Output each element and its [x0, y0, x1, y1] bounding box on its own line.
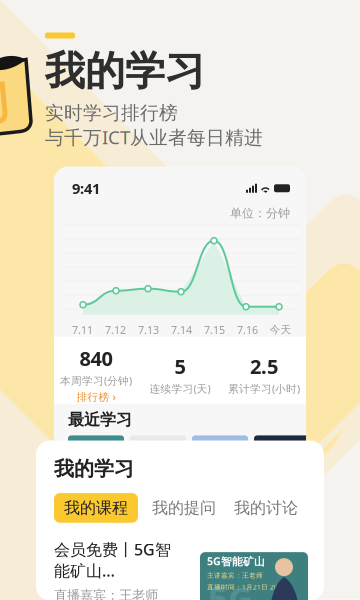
staticText: 我的学习 [45, 46, 205, 96]
staticText: 本周学习(分钟) [60, 373, 132, 388]
staticText: 会员免费丨5G智能矿山… [54, 539, 171, 581]
staticText: 我的提问 [152, 498, 216, 518]
staticText: 实时学习排行榜 [45, 102, 178, 124]
staticText: 5 [174, 353, 185, 380]
staticText: 7.11 [72, 323, 93, 337]
staticText: 累计学习(小时) [228, 381, 300, 396]
staticText: 排行榜 › [76, 390, 115, 404]
staticText: 7.12 [105, 323, 126, 337]
staticText: 2.5 [250, 353, 278, 380]
staticText: 7.15 [204, 323, 225, 337]
staticText: 我的课程 [64, 498, 128, 518]
staticText: 7.16 [237, 323, 258, 337]
staticText: 7.14 [171, 323, 192, 337]
staticText: 连续学习(天) [149, 381, 210, 396]
staticText: 9:41 [72, 178, 100, 198]
staticText: 我的讨论 [234, 498, 298, 518]
staticText: 直播时间：1月21日 20:00 [207, 583, 288, 591]
staticText: 与千万ICT从业者每日精进 [45, 125, 263, 149]
staticText: 5G [208, 575, 253, 600]
button[interactable]: 我的提问 [138, 498, 220, 518]
staticText: 7.13 [138, 323, 159, 337]
staticText: 5G智能矿山 [207, 554, 265, 568]
staticText: 我的学习 [54, 456, 134, 481]
staticText: 最近学习 [68, 410, 132, 429]
staticText: 主讲嘉宾：王老师 [207, 571, 263, 580]
staticText: 直播嘉宾：王老师 [54, 587, 158, 600]
staticText: 单位：分钟 [230, 206, 290, 221]
button[interactable]: 我的课程 [54, 493, 138, 523]
button[interactable]: 我的讨论 [220, 498, 298, 518]
staticText: 840 [79, 345, 112, 371]
staticText: 今天 [269, 323, 291, 336]
